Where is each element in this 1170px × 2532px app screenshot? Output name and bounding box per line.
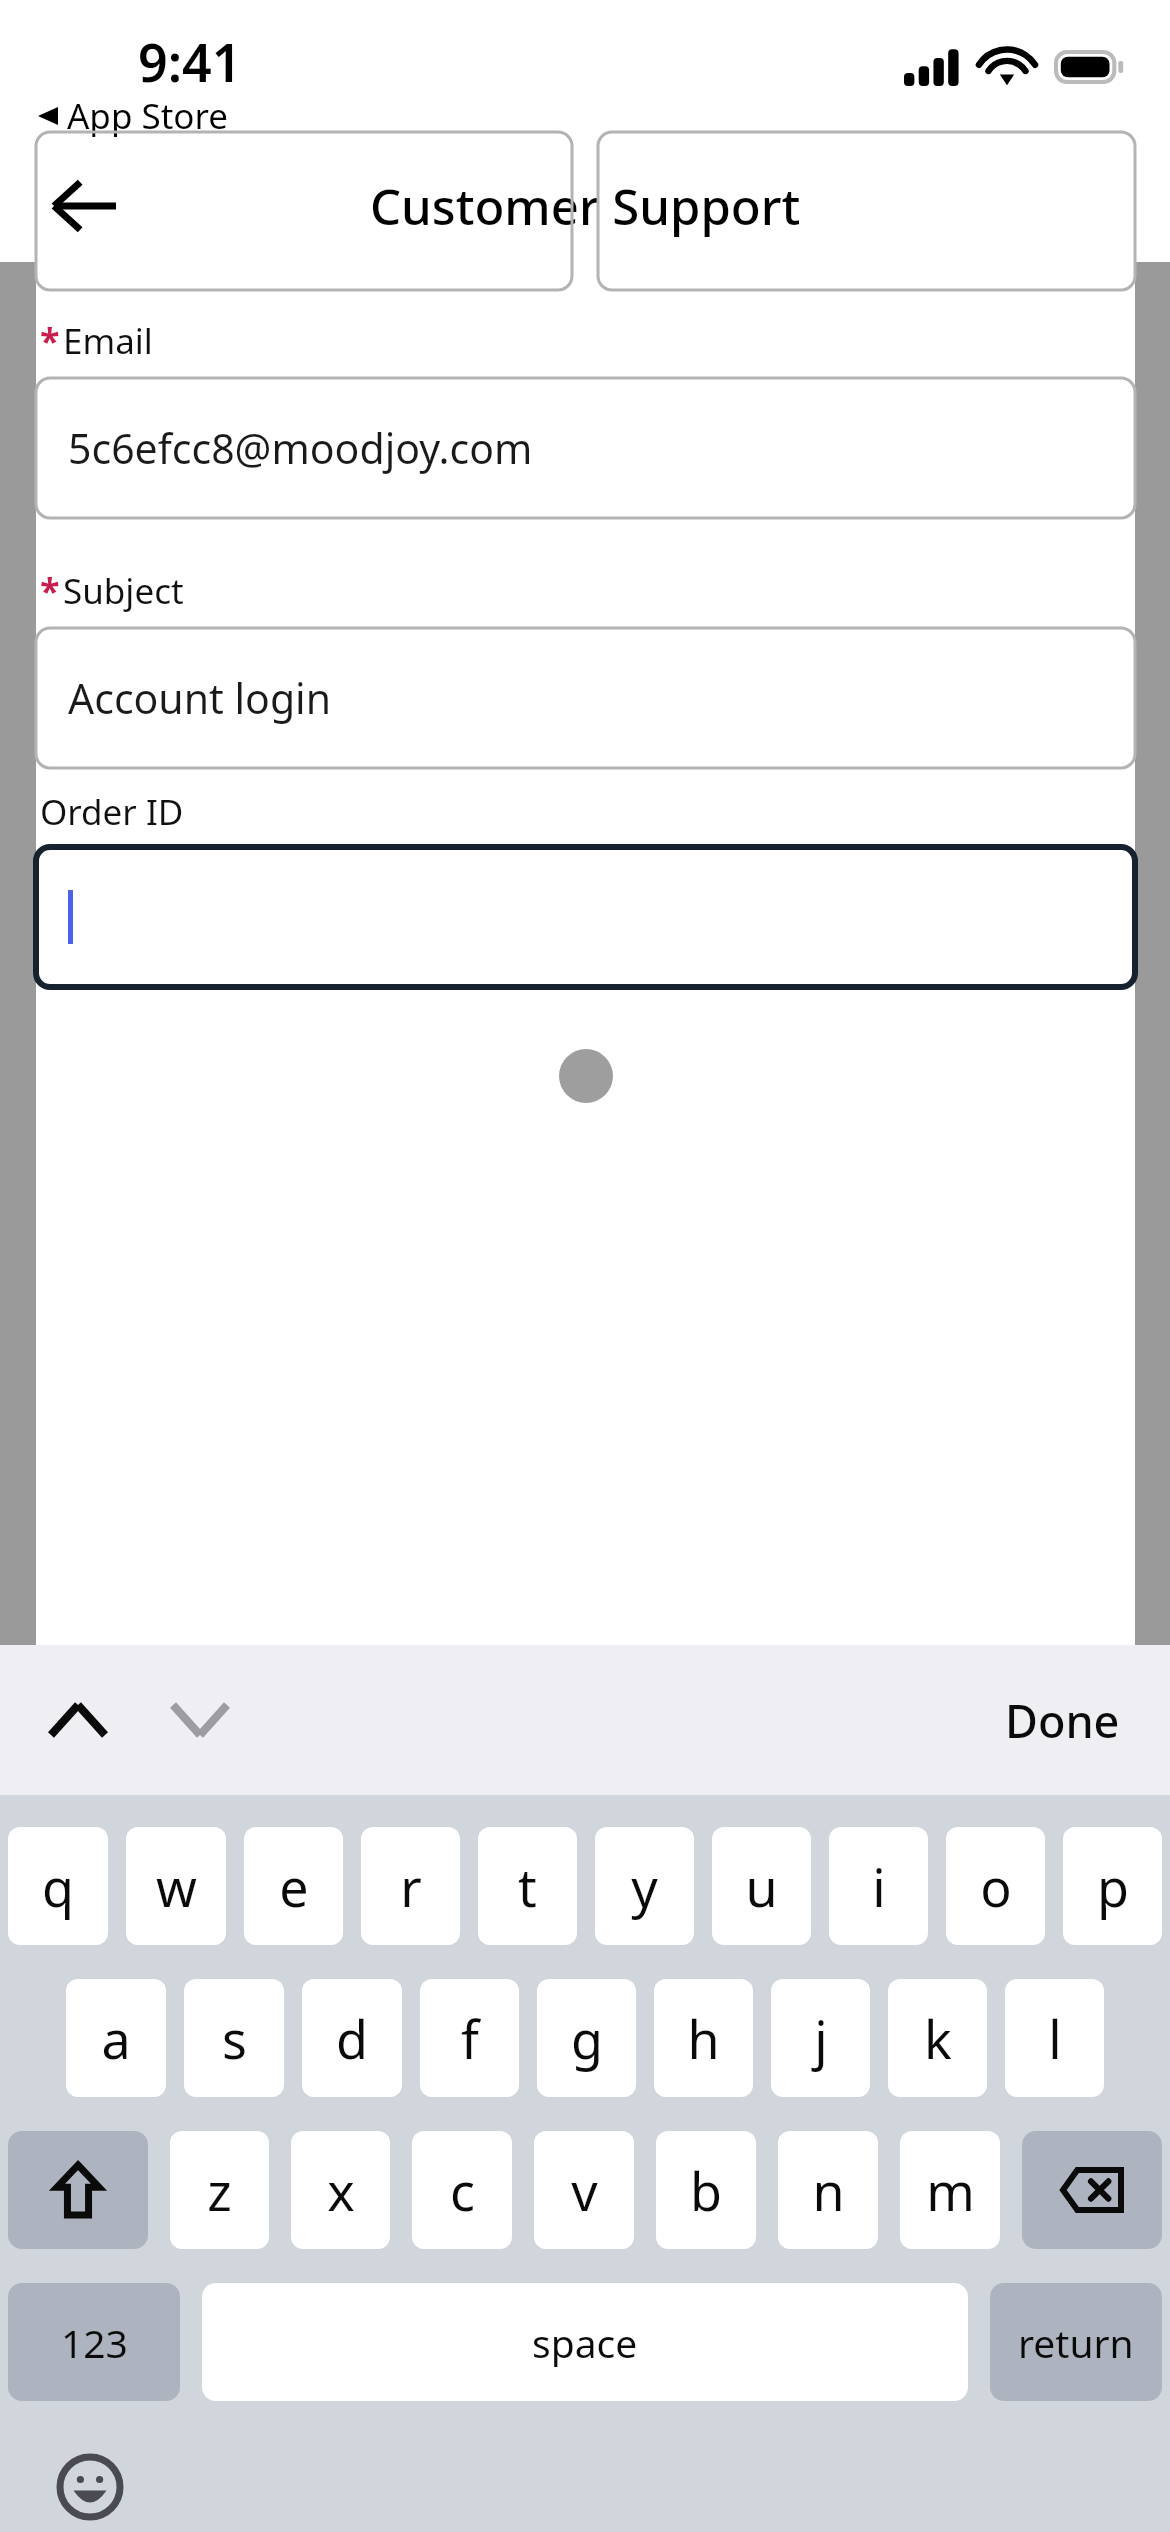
button[interactable]: w (126, 1827, 226, 1945)
button[interactable]: e (244, 1827, 343, 1945)
staticText: Customer Support (370, 173, 801, 240)
staticText: k (924, 2003, 952, 2074)
staticText: x (327, 2155, 355, 2226)
button[interactable]: t (478, 1827, 577, 1945)
staticText: g (571, 2003, 603, 2074)
button[interactable]: s (184, 1979, 284, 2097)
staticText: return (1018, 2316, 1134, 2369)
button[interactable]: l (1005, 1979, 1104, 2097)
button[interactable]: k (888, 1979, 987, 2097)
staticText: c (450, 2155, 475, 2226)
button[interactable] (598, 262, 1135, 290)
button[interactable] (36, 262, 572, 290)
staticText: l (1048, 2003, 1062, 2074)
button[interactable]: Shift (8, 2131, 148, 2249)
staticText: App Store (67, 92, 229, 140)
staticText: b (690, 2155, 722, 2226)
staticText: Email (63, 317, 153, 365)
button[interactable]: x (291, 2131, 390, 2249)
button[interactable]: m (900, 2131, 1000, 2249)
staticText: u (745, 1851, 778, 1922)
staticText: Order ID (40, 788, 184, 836)
staticText: space (532, 2316, 638, 2369)
button[interactable]: h (654, 1979, 753, 2097)
button[interactable]: p (1063, 1827, 1162, 1945)
staticText: Subject (63, 567, 184, 615)
staticText: f (461, 2003, 479, 2074)
button[interactable]: Previous field (30, 1672, 126, 1768)
staticText: Done (1005, 1690, 1120, 1751)
staticText: * (40, 566, 60, 615)
staticText: q (42, 1851, 74, 1922)
staticText: v (571, 2155, 598, 2226)
staticText: r (400, 1851, 422, 1922)
button[interactable]: d (302, 1979, 402, 2097)
button[interactable]: n (778, 2131, 878, 2249)
button[interactable]: y (595, 1827, 694, 1945)
button[interactable]: q (8, 1827, 108, 1945)
button[interactable]: u (712, 1827, 811, 1945)
button[interactable]: r (361, 1827, 460, 1945)
staticText: j (814, 2003, 828, 2074)
staticText: n (812, 2155, 845, 2226)
button[interactable]: Emoji keyboard (46, 2443, 134, 2531)
button[interactable]: j (771, 1979, 870, 2097)
button[interactable]: 123 (8, 2283, 180, 2401)
button[interactable]: Back (36, 158, 132, 254)
staticText: 5c6efcc8@moodjoy.com (68, 420, 533, 476)
button[interactable]: z (170, 2131, 269, 2249)
button[interactable]: Next field (152, 1672, 248, 1768)
button[interactable] (36, 847, 1135, 987)
staticText: Account login (68, 670, 332, 726)
staticText: y (631, 1851, 658, 1922)
staticText: i (872, 1851, 886, 1922)
button[interactable]: Backspace (1022, 2131, 1162, 2249)
staticText: w (156, 1851, 197, 1922)
button[interactable]: f (420, 1979, 519, 2097)
staticText: t (518, 1851, 537, 1922)
button[interactable]: Done (983, 1670, 1142, 1771)
staticText: p (1097, 1851, 1129, 1922)
button[interactable]: c (412, 2131, 512, 2249)
button[interactable]: g (537, 1979, 636, 2097)
staticText: m (926, 2155, 975, 2226)
button[interactable]: b (656, 2131, 756, 2249)
button[interactable]: space (202, 2283, 968, 2401)
button[interactable]: return (990, 2283, 1162, 2401)
button[interactable]: 5c6efcc8@moodjoy.com (36, 378, 1135, 518)
staticText: a (101, 2003, 131, 2074)
staticText: e (279, 1851, 309, 1922)
staticText: h (687, 2003, 720, 2074)
button[interactable]: o (946, 1827, 1045, 1945)
staticText: 9:41 (138, 26, 242, 97)
button[interactable]: a (66, 1979, 166, 2097)
staticText: d (336, 2003, 368, 2074)
staticText: o (980, 1851, 1012, 1922)
button[interactable]: Account login (36, 628, 1135, 768)
staticText: * (40, 316, 60, 365)
staticText: s (222, 2003, 247, 2074)
staticText: 123 (61, 2316, 128, 2369)
button[interactable]: v (534, 2131, 634, 2249)
staticText: z (207, 2155, 232, 2226)
button[interactable]: i (829, 1827, 928, 1945)
